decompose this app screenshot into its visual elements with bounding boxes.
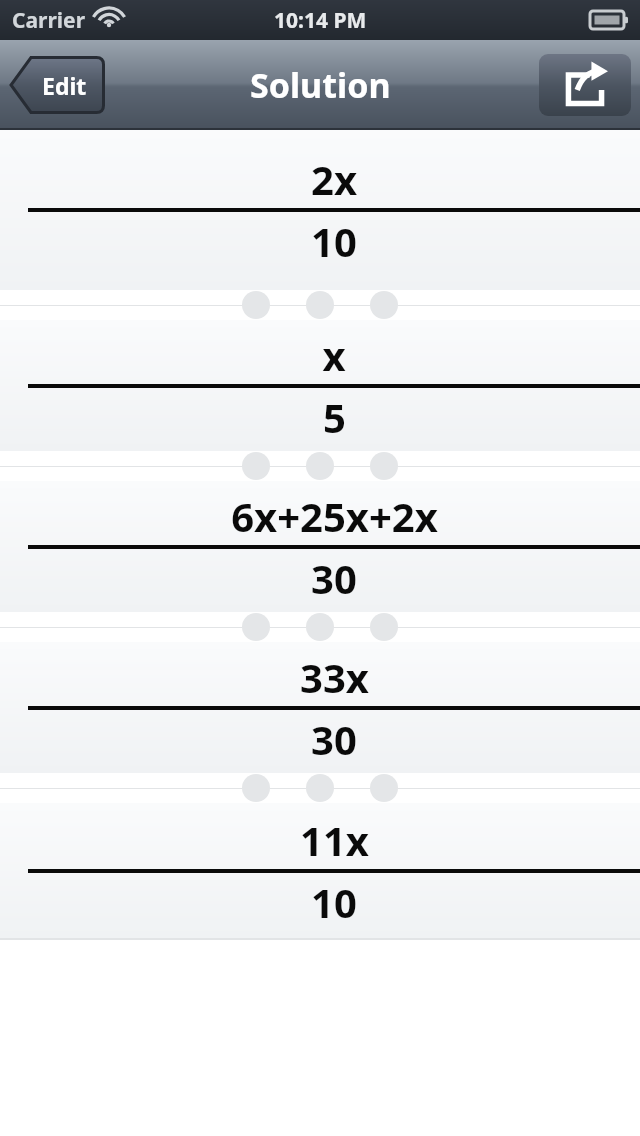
staticText: 10 [311,875,357,929]
button[interactable]: x [0,320,640,451]
button[interactable]: 6x+25x+2x [0,481,640,612]
button[interactable]: Share [539,54,631,116]
staticText: 11x [300,813,369,867]
staticText: 5 [323,390,346,444]
button[interactable]: Edit [9,56,105,114]
staticText: 2x [311,152,357,206]
button[interactable]: 33x [0,642,640,773]
staticText: 10:14 PM [274,6,367,35]
button[interactable]: 2x [0,130,640,290]
staticText: Carrier [12,6,86,35]
staticText: Solution [250,62,391,108]
staticText: x [322,328,346,382]
button[interactable]: 11x [0,803,640,938]
staticText: Edit [42,70,87,101]
staticText: 30 [311,551,357,605]
staticText: 10 [311,214,357,268]
staticText: 30 [311,712,357,766]
staticText: 33x [300,650,369,704]
staticText: 6x+25x+2x [231,489,438,543]
